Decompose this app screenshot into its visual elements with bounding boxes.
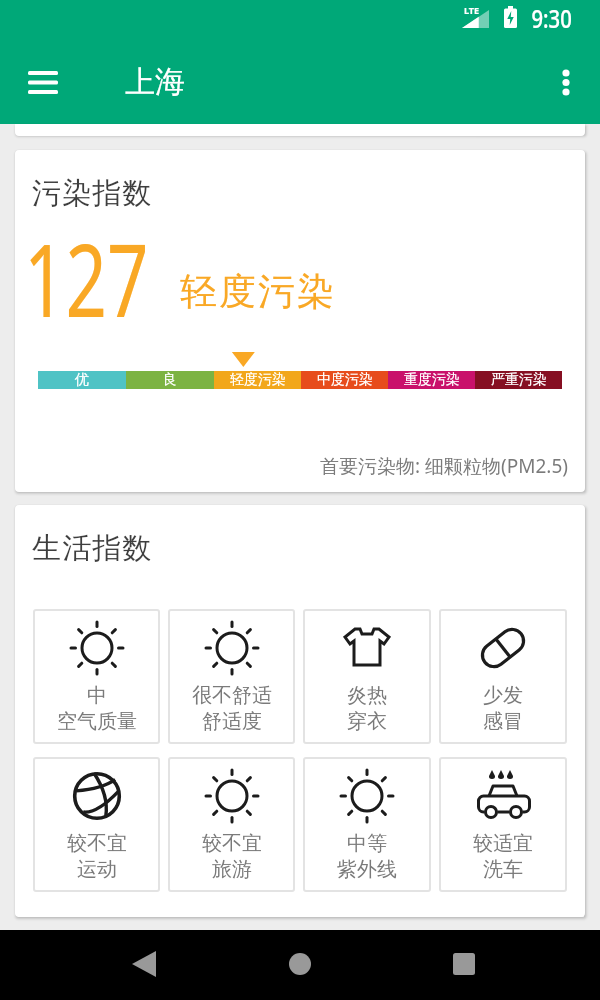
staticText: 127: [24, 210, 149, 322]
staticText: 中等 紫外线: [337, 831, 397, 882]
button[interactable]: 少发 感冒: [439, 609, 567, 744]
button[interactable]: 较不宜 运动: [33, 757, 160, 892]
staticText: 中 空气质量: [57, 683, 137, 734]
button[interactable]: 炎热 穿衣: [303, 609, 431, 744]
staticText: 轻度污染: [179, 268, 335, 315]
staticText: 中度污染: [317, 371, 373, 389]
staticText: 首要污染物: 细颗粒物(PM2.5): [320, 453, 568, 479]
staticText: 较不宜 旅游: [202, 831, 262, 882]
button[interactable]: 很不舒适 舒适度: [168, 609, 295, 744]
staticText: 较适宜 洗车: [473, 831, 533, 882]
staticText: 较不宜 运动: [67, 831, 127, 882]
staticText: 污染指数: [32, 175, 153, 212]
button[interactable]: 较不宜 旅游: [168, 757, 295, 892]
staticText: 严重污染: [491, 371, 547, 389]
staticText: 少发 感冒: [483, 683, 523, 734]
button[interactable]: [544, 60, 588, 104]
button[interactable]: 中 空气质量: [33, 609, 160, 744]
staticText: LTE: [464, 4, 480, 16]
staticText: 生活指数: [32, 530, 153, 567]
staticText: 优: [75, 371, 89, 389]
staticText: 很不舒适 舒适度: [192, 683, 272, 734]
button[interactable]: [442, 942, 486, 986]
button[interactable]: [122, 942, 166, 986]
staticText: 上海: [125, 63, 185, 101]
staticText: 轻度污染: [230, 371, 286, 389]
staticText: 9:30: [531, 0, 572, 35]
button[interactable]: 中等 紫外线: [303, 757, 431, 892]
button[interactable]: [278, 942, 322, 986]
staticText: 炎热 穿衣: [347, 683, 387, 734]
button[interactable]: [21, 60, 65, 104]
staticText: 重度污染: [404, 371, 460, 389]
button[interactable]: 较适宜 洗车: [439, 757, 567, 892]
staticText: 良: [163, 371, 177, 389]
